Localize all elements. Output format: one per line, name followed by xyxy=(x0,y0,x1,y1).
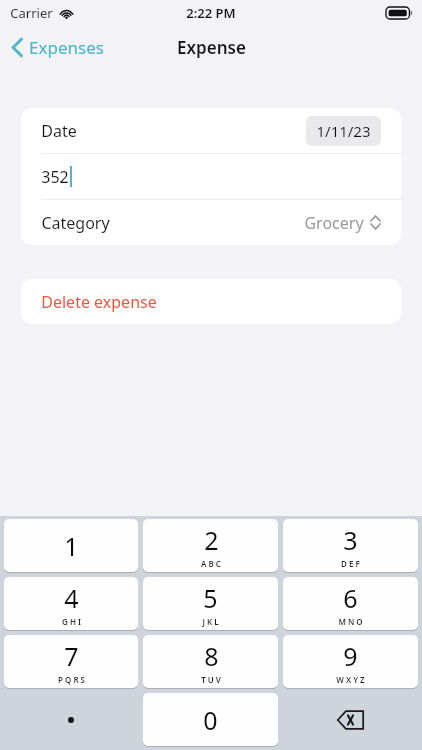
button[interactable]: 1 xyxy=(4,519,138,572)
button[interactable]: Backspace xyxy=(283,693,418,747)
staticText: G H I xyxy=(62,616,81,627)
staticText: 1/11/23 xyxy=(316,121,371,141)
staticText: 8 xyxy=(204,639,219,673)
staticText: 6 xyxy=(343,581,358,615)
staticText: Delete expense xyxy=(41,291,157,313)
staticText: W X Y Z xyxy=(336,674,365,685)
button[interactable]: Category xyxy=(21,200,401,245)
button[interactable]: Date xyxy=(21,108,401,153)
staticText: Category xyxy=(41,212,110,234)
staticText: J K L xyxy=(202,616,219,627)
button[interactable]: 3 xyxy=(283,519,418,572)
button[interactable]: Expenses xyxy=(0,30,116,65)
staticText: Expenses xyxy=(29,36,104,59)
staticText: 352 xyxy=(41,166,69,188)
button[interactable]: 2 xyxy=(143,519,278,572)
button[interactable]: Decimal point xyxy=(4,693,138,747)
button[interactable]: 6 xyxy=(283,577,418,630)
staticText: 3 xyxy=(343,523,358,557)
button[interactable]: 4 xyxy=(4,577,138,630)
button[interactable]: 0 xyxy=(143,693,278,746)
staticText: 0 xyxy=(203,703,218,737)
staticText: T U V xyxy=(201,674,221,685)
staticText: 7 xyxy=(64,639,79,673)
staticText: Carrier xyxy=(10,4,53,22)
staticText: Date xyxy=(41,120,77,142)
button[interactable]: Delete expense xyxy=(21,279,401,324)
button[interactable]: 7 xyxy=(4,635,138,688)
staticText: A B C xyxy=(201,558,221,569)
staticText: M N O xyxy=(338,616,363,627)
staticText: 1 xyxy=(64,529,79,563)
staticText: 9 xyxy=(343,639,358,673)
staticText: Grocery xyxy=(304,212,364,234)
button[interactable]: 5 xyxy=(143,577,278,630)
button[interactable]: 9 xyxy=(283,635,418,688)
staticText: 2 xyxy=(204,523,219,557)
staticText: 4 xyxy=(64,581,79,615)
staticText: Expense xyxy=(177,36,246,59)
button[interactable]: 352 xyxy=(21,154,401,199)
staticText: P Q R S xyxy=(58,674,85,685)
staticText: D E F xyxy=(341,558,360,569)
staticText: 2:22 PM xyxy=(186,4,236,22)
staticText: 5 xyxy=(203,581,218,615)
button[interactable]: 8 xyxy=(143,635,278,688)
